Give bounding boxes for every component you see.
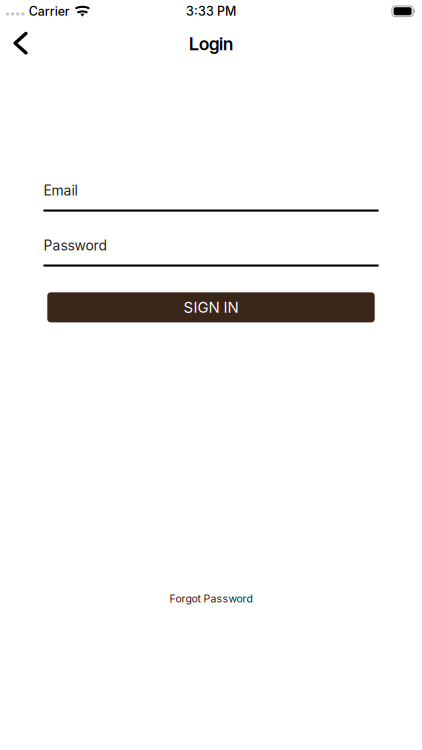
button[interactable]: Forgot Password: [159, 586, 262, 611]
button[interactable]: Email: [43, 182, 379, 212]
staticText: Email: [43, 182, 77, 199]
staticText: Password: [43, 237, 106, 254]
staticText: Carrier: [29, 4, 70, 19]
button[interactable]: SIGN IN: [47, 292, 375, 322]
staticText: Login: [189, 33, 233, 54]
button[interactable]: Password: [43, 237, 379, 267]
staticText: SIGN IN: [183, 298, 238, 316]
staticText: 3:33 PM: [186, 4, 236, 19]
staticText: Forgot Password: [169, 592, 252, 605]
button[interactable]: Back: [0, 24, 44, 63]
